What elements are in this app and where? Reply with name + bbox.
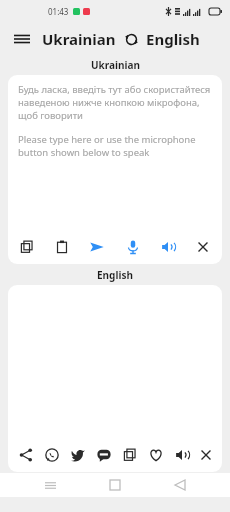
button[interactable]: Twitter: [65, 442, 91, 468]
button[interactable]: SMS: [91, 442, 117, 468]
button[interactable]: Будь ласка, введіть тут або скористайтес…: [8, 75, 222, 230]
button[interactable]: WhatsApp: [39, 442, 65, 468]
button[interactable]: Ukrainian: [42, 29, 116, 49]
button[interactable]: Clear: [195, 442, 217, 468]
button[interactable]: Speak: [155, 234, 181, 260]
button[interactable]: Menu: [8, 25, 36, 53]
button[interactable]: Recent apps: [35, 473, 65, 497]
button[interactable]: Swap languages: [121, 29, 141, 49]
button[interactable]: Paste: [49, 234, 75, 260]
staticText: English: [97, 268, 133, 282]
staticText: Ukrainian: [91, 58, 140, 72]
button[interactable]: Microphone: [120, 234, 146, 260]
button[interactable]: Translate: [84, 234, 110, 260]
button[interactable]: Favourite: [143, 442, 169, 468]
staticText: 01:43: [48, 6, 69, 17]
button[interactable]: English: [146, 29, 200, 49]
button[interactable]: Share: [13, 442, 39, 468]
button[interactable]: Back: [165, 473, 195, 497]
staticText: Будь ласка, введіть тут або скористайтес…: [18, 83, 214, 122]
staticText: English: [146, 29, 200, 49]
staticText: Please type here or use the microphone b…: [18, 133, 214, 159]
staticText: Ukrainian: [42, 29, 116, 49]
button[interactable]: Clear: [190, 234, 216, 260]
button[interactable]: Copy: [14, 234, 40, 260]
button[interactable]: Copy: [117, 442, 143, 468]
button[interactable]: Speak: [169, 442, 195, 468]
button[interactable]: Home: [100, 473, 130, 497]
